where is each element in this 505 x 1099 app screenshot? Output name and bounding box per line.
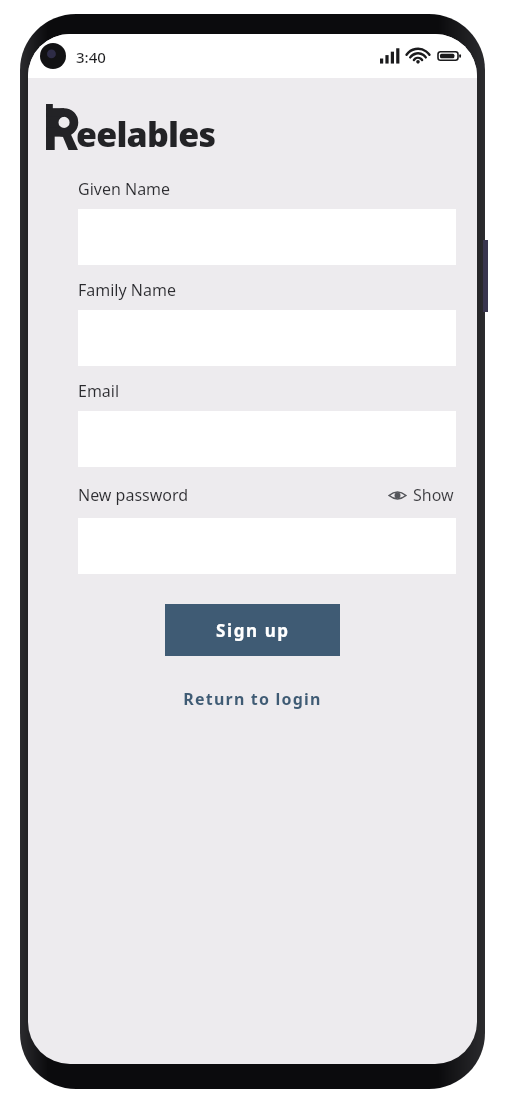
staticText: eelables	[76, 111, 216, 157]
staticText: 3:40	[76, 47, 106, 67]
staticText: Email	[78, 380, 120, 402]
button[interactable]: Return to login	[169, 682, 336, 716]
staticText: Show	[413, 484, 454, 506]
staticText: Return to login	[183, 688, 322, 710]
button[interactable]: Sign up	[165, 604, 340, 656]
staticText: New password	[78, 484, 189, 506]
staticText: Given Name	[78, 178, 171, 200]
staticText: Family Name	[78, 279, 176, 301]
staticText: Sign up	[216, 619, 290, 642]
button[interactable]: Show password	[387, 481, 456, 509]
